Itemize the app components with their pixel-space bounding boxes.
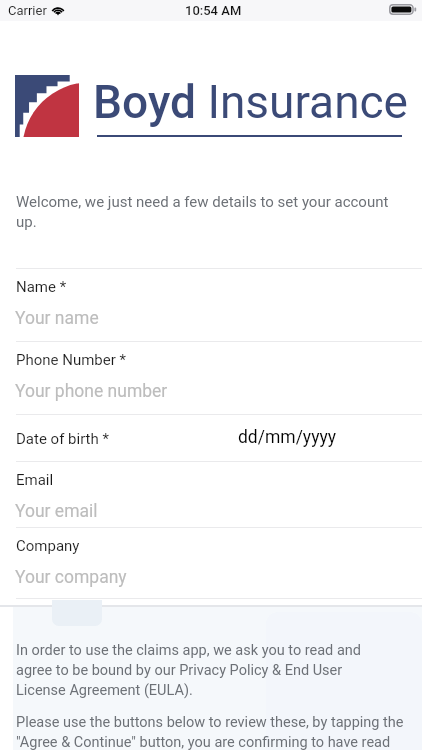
staticText: Date of birth *	[16, 430, 109, 448]
staticText: Name *	[16, 278, 67, 296]
staticText: Your email	[15, 501, 98, 522]
button[interactable]: Date of birth *	[0, 414, 422, 461]
staticText: Carrier	[8, 3, 47, 18]
staticText: 10:54 AM	[185, 3, 242, 18]
staticText: Company	[16, 537, 80, 555]
button[interactable]: Name *	[0, 268, 422, 341]
staticText: Insurance	[196, 75, 409, 129]
staticText: Your phone number	[15, 381, 168, 402]
button[interactable]: Email	[0, 461, 422, 534]
button[interactable]	[266, 612, 422, 750]
staticText: dd/mm/yyyy	[238, 427, 336, 448]
staticText: Please use the buttons below to review t…	[16, 714, 406, 750]
staticText: Phone Number *	[16, 351, 127, 369]
staticText: In order to use the claims app, we ask y…	[16, 642, 390, 699]
staticText: Welcome, we just need a few details to s…	[16, 193, 392, 230]
staticText: Email	[16, 471, 54, 489]
staticText: Your company	[15, 567, 127, 588]
button[interactable]: Company	[0, 527, 422, 600]
button[interactable]: Phone Number *	[0, 341, 422, 414]
staticText: Boyd	[93, 75, 196, 129]
staticText: Your name	[15, 308, 99, 329]
